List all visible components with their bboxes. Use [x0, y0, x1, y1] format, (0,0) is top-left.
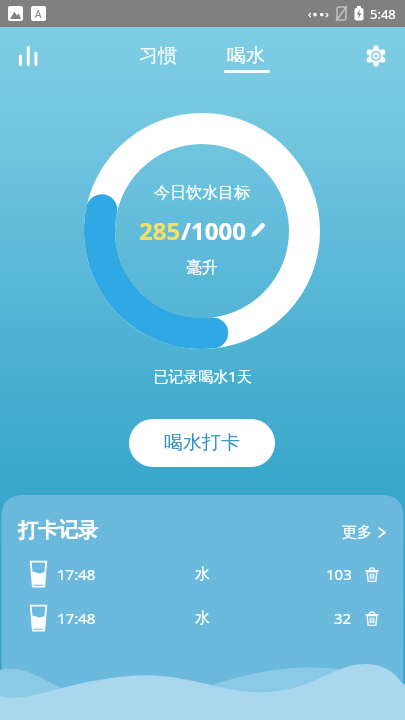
- button[interactable]: 更多: [340, 521, 388, 544]
- staticText: 毫升: [186, 258, 218, 278]
- button[interactable]: 喝水: [216, 33, 276, 79]
- button[interactable]: Delete: [360, 562, 384, 586]
- staticText: 水: [195, 609, 210, 628]
- staticText: 喝水打卡: [164, 431, 240, 455]
- button[interactable]: Delete: [360, 606, 384, 630]
- staticText: 喝水: [227, 44, 265, 68]
- staticText: 103: [326, 564, 352, 584]
- staticText: 已记录喝水1天: [153, 366, 252, 386]
- staticText: A: [35, 7, 42, 21]
- staticText: 水: [195, 565, 210, 584]
- staticText: 打卡记录: [18, 518, 98, 543]
- staticText: 习惯: [139, 44, 177, 68]
- staticText: 17:48: [57, 564, 96, 584]
- staticText: ‹∙∙›: [308, 6, 329, 21]
- staticText: 今日饮水目标: [154, 183, 250, 203]
- staticText: 更多: [342, 523, 372, 542]
- button[interactable]: Statistics: [6, 36, 46, 76]
- button[interactable]: 17:48: [0, 552, 405, 596]
- staticText: /1000: [181, 214, 246, 246]
- button[interactable]: 打卡记录: [18, 518, 98, 543]
- button[interactable]: 17:48: [0, 596, 405, 640]
- staticText: 32: [334, 608, 352, 628]
- staticText: 285: [139, 214, 181, 246]
- button[interactable]: 习惯: [128, 33, 188, 79]
- button[interactable]: 喝水打卡: [129, 419, 275, 467]
- staticText: 5:48: [370, 5, 396, 23]
- staticText: 17:48: [57, 608, 96, 628]
- button[interactable]: Settings: [356, 36, 396, 76]
